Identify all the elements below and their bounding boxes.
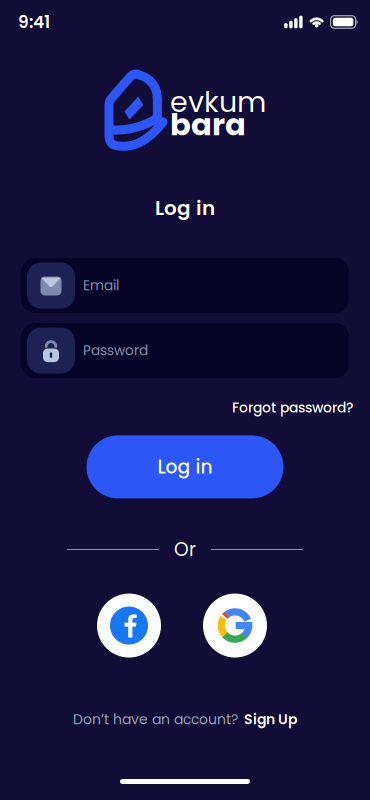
button[interactable]: Forgot password? — [232, 398, 353, 417]
staticText: Or — [174, 536, 196, 562]
staticText: Sign Up — [244, 709, 297, 729]
button[interactable]: Log in with Google — [203, 593, 267, 657]
staticText: evkum — [170, 82, 266, 122]
staticText: Password — [83, 341, 148, 360]
button[interactable]: Log in with Facebook — [97, 593, 161, 657]
staticText: bara — [170, 103, 246, 146]
staticText: Don’t have an account? — [73, 709, 238, 729]
button[interactable]: Log in — [86, 435, 283, 498]
button[interactable]: Email — [21, 258, 349, 313]
staticText: Email — [83, 276, 119, 295]
staticText: 9:41 — [18, 10, 50, 34]
staticText: Log in — [157, 454, 212, 480]
staticText: Forgot password? — [232, 398, 353, 417]
button[interactable]: Password — [21, 323, 349, 378]
button[interactable]: Sign Up — [244, 709, 297, 729]
staticText: Log in — [155, 194, 215, 222]
